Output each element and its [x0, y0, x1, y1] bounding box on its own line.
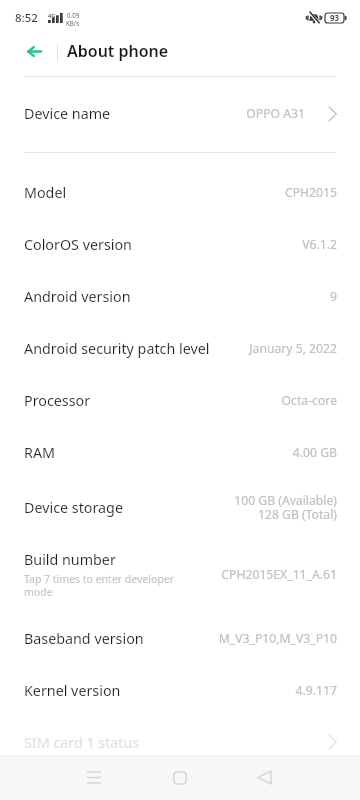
staticText: 9: [330, 288, 337, 305]
staticText: M_V3_P10,M_V3_P10: [218, 630, 337, 647]
button[interactable]: Kernel version: [0, 662, 360, 714]
staticText: 93: [330, 12, 340, 23]
button[interactable]: Back: [240, 755, 288, 800]
button[interactable]: Home: [156, 755, 204, 800]
staticText: ColorOS version: [24, 235, 132, 254]
staticText: About phone: [67, 40, 169, 62]
staticText: 4G: [48, 12, 56, 19]
staticText: KB/s: [66, 19, 80, 27]
staticText: Device name: [24, 104, 111, 123]
staticText: January 5, 2022: [249, 340, 337, 357]
button[interactable]: Build number: [0, 534, 360, 610]
staticText: Build number: [24, 550, 116, 569]
staticText: Android security patch level: [24, 339, 210, 358]
staticText: 4.00 GB: [292, 444, 337, 461]
staticText: V6.1.2: [302, 236, 337, 253]
button[interactable]: Android security patch level: [0, 322, 360, 374]
button[interactable]: ColorOS version: [0, 218, 360, 270]
staticText: 8:52: [15, 10, 38, 26]
staticText: Baseband version: [24, 629, 144, 648]
button[interactable]: Model: [0, 166, 360, 218]
staticText: Device storage: [24, 498, 123, 517]
staticText: Octa-core: [281, 392, 337, 409]
staticText: RAM: [24, 443, 55, 462]
staticText: 100 GB (Available) 128 GB (Total): [234, 492, 337, 522]
button[interactable]: RAM: [0, 426, 360, 478]
button[interactable]: Android version: [0, 270, 360, 322]
staticText: Processor: [24, 391, 91, 410]
button[interactable]: Processor: [0, 374, 360, 426]
button[interactable]: SIM card 1 status: [0, 714, 360, 766]
staticText: 4.9.117: [295, 682, 337, 699]
staticText: OPPO A31: [246, 105, 305, 122]
staticText: Android version: [24, 287, 131, 306]
staticText: CPH2015: [285, 184, 337, 201]
button[interactable]: Baseband version: [0, 610, 360, 662]
staticText: CPH2015EX_11_A.61: [221, 566, 337, 583]
staticText: SIM card 1 status: [24, 733, 140, 752]
button[interactable]: Device storage: [0, 478, 360, 534]
staticText: Model: [24, 183, 67, 202]
staticText: 0.09: [67, 11, 80, 19]
button[interactable]: Back: [12, 29, 56, 73]
staticText: Kernel version: [24, 681, 121, 700]
staticText: Tap 7 times to enter developer mode: [24, 572, 175, 599]
button[interactable]: Recent apps: [70, 755, 118, 800]
button[interactable]: Device name: [0, 77, 360, 152]
